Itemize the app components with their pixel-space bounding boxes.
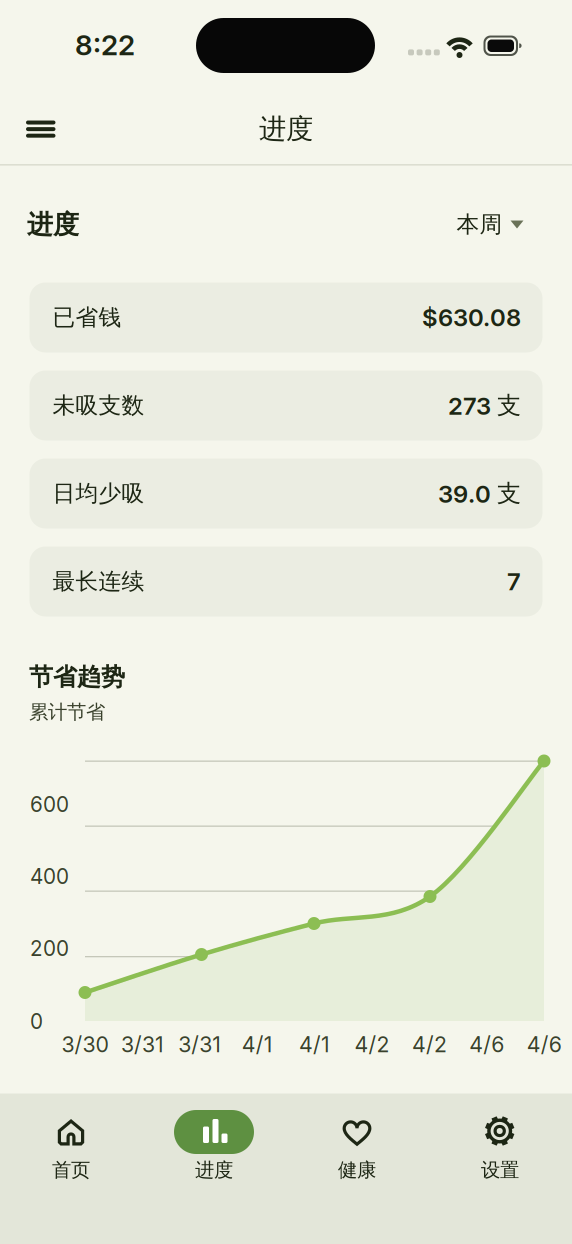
staticText: 4/6 [527,1032,562,1057]
staticText: 最长连续 [52,567,144,596]
staticText: 200 [30,936,69,961]
staticText: 未吸支数 [52,391,144,420]
staticText: 设置 [481,1158,519,1182]
staticText: 进度 [259,112,313,146]
staticText: 4/2 [412,1032,447,1057]
staticText: 日均少吸 [52,479,144,508]
staticText: 累计节省 [29,700,105,724]
staticText: 进度 [195,1158,233,1182]
button[interactable]: 菜单 [15,107,67,151]
staticText: 4/6 [469,1032,504,1057]
staticText: 本周 [456,210,502,239]
staticText: 进度 [27,208,79,241]
staticText: 39.0 支 [438,478,521,509]
staticText: 4/1 [299,1032,330,1057]
button[interactable]: 本周 [456,210,523,239]
staticText: 600 [30,792,69,817]
staticText: $630.08 [422,303,521,332]
staticText: 7 [507,567,521,596]
staticText: 4/1 [242,1032,273,1057]
staticText: 0 [30,1009,43,1034]
button[interactable]: 设置 [440,1108,560,1184]
staticText: 3/31 [121,1032,164,1057]
staticText: 8:22 [75,28,135,62]
staticText: 3/30 [61,1032,108,1057]
staticText: 健康 [338,1158,376,1182]
staticText: 首页 [52,1158,90,1182]
staticText: 400 [30,864,69,889]
staticText: 4/2 [354,1032,389,1057]
button[interactable]: 进度 [154,1108,274,1184]
staticText: 节省趋势 [29,662,125,692]
button[interactable]: 首页 [11,1108,131,1184]
staticText: 已省钱 [52,303,121,332]
button[interactable]: 健康 [297,1108,417,1184]
staticText: 273 支 [448,390,521,421]
staticText: 3/31 [178,1032,221,1057]
